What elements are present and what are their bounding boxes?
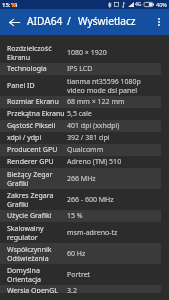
staticText: 1080 × 1920 — [67, 48, 107, 58]
button[interactable] — [0, 189, 161, 210]
button[interactable] — [0, 243, 161, 264]
staticText: Panel ID — [7, 81, 68, 91]
staticText: Qualcomm — [67, 145, 104, 155]
button[interactable] — [0, 168, 161, 189]
button[interactable] — [0, 63, 161, 75]
button[interactable] — [0, 285, 161, 297]
button[interactable] — [0, 144, 161, 156]
staticText: 5,5 cale — [67, 109, 92, 119]
staticText: Wersja OpenGL — [7, 286, 68, 296]
button[interactable]: Back — [2, 10, 27, 35]
staticText: 401 dpi (xxhdpi) — [67, 121, 120, 131]
staticText: Zakres Zegara Grafiki — [7, 191, 68, 209]
staticText: Rozdzielczość Ekranu — [7, 44, 68, 62]
staticText: Adreno (TM) 510 — [67, 157, 122, 167]
staticText: Portret — [67, 270, 91, 280]
staticText: Gęstość Pikseli — [7, 121, 68, 131]
staticText: Renderer GPU — [7, 157, 68, 167]
staticText: Wyświetlacz — [78, 14, 136, 28]
staticText: 60 Hz — [67, 249, 86, 259]
staticText: Technologia — [7, 64, 68, 74]
staticText: 15 % — [67, 211, 83, 221]
staticText: / — [67, 14, 71, 28]
staticText: Skalowalny regulator — [7, 224, 68, 242]
button[interactable] — [0, 96, 161, 108]
staticText: Rozmiar Ekranu — [7, 97, 68, 107]
button[interactable] — [0, 132, 161, 144]
button[interactable]: More options — [149, 12, 169, 32]
staticText: Użycie Grafiki — [7, 211, 68, 221]
staticText: 40% — [156, 1, 167, 8]
staticText: xdpi / ydpi — [7, 133, 68, 143]
staticText: 266 - 600 MHz — [67, 195, 114, 205]
staticText: 4G — [135, 1, 142, 8]
staticText: Producent GPU — [7, 145, 68, 155]
staticText: msm-adreno-tz — [67, 228, 118, 238]
staticText: 392 / 381 dpi — [67, 133, 110, 143]
button[interactable] — [0, 42, 161, 63]
button[interactable] — [0, 210, 161, 222]
staticText: Przekątna Ekranu — [7, 109, 68, 119]
button[interactable] — [0, 222, 161, 243]
staticText: Domyślna Orientacja — [7, 266, 68, 284]
button[interactable] — [0, 120, 161, 132]
staticText: 68 mm × 122 mm — [67, 97, 125, 107]
staticText: Bieżący Zegar Grafiki — [7, 170, 68, 188]
staticText: 3.2 — [67, 286, 77, 296]
staticText: tianma nt35596 1080p video mode dsi pane… — [67, 77, 141, 95]
staticText: IPS LCD — [67, 64, 93, 74]
button[interactable] — [0, 264, 161, 285]
staticText: Współczynnik Odświeżania — [7, 245, 68, 263]
staticText: 266 MHz — [67, 174, 96, 184]
button[interactable] — [0, 108, 161, 120]
staticText: AIDA64 — [27, 14, 63, 28]
button[interactable] — [0, 156, 161, 168]
button[interactable] — [0, 75, 161, 96]
staticText: 15:15 — [2, 1, 18, 9]
